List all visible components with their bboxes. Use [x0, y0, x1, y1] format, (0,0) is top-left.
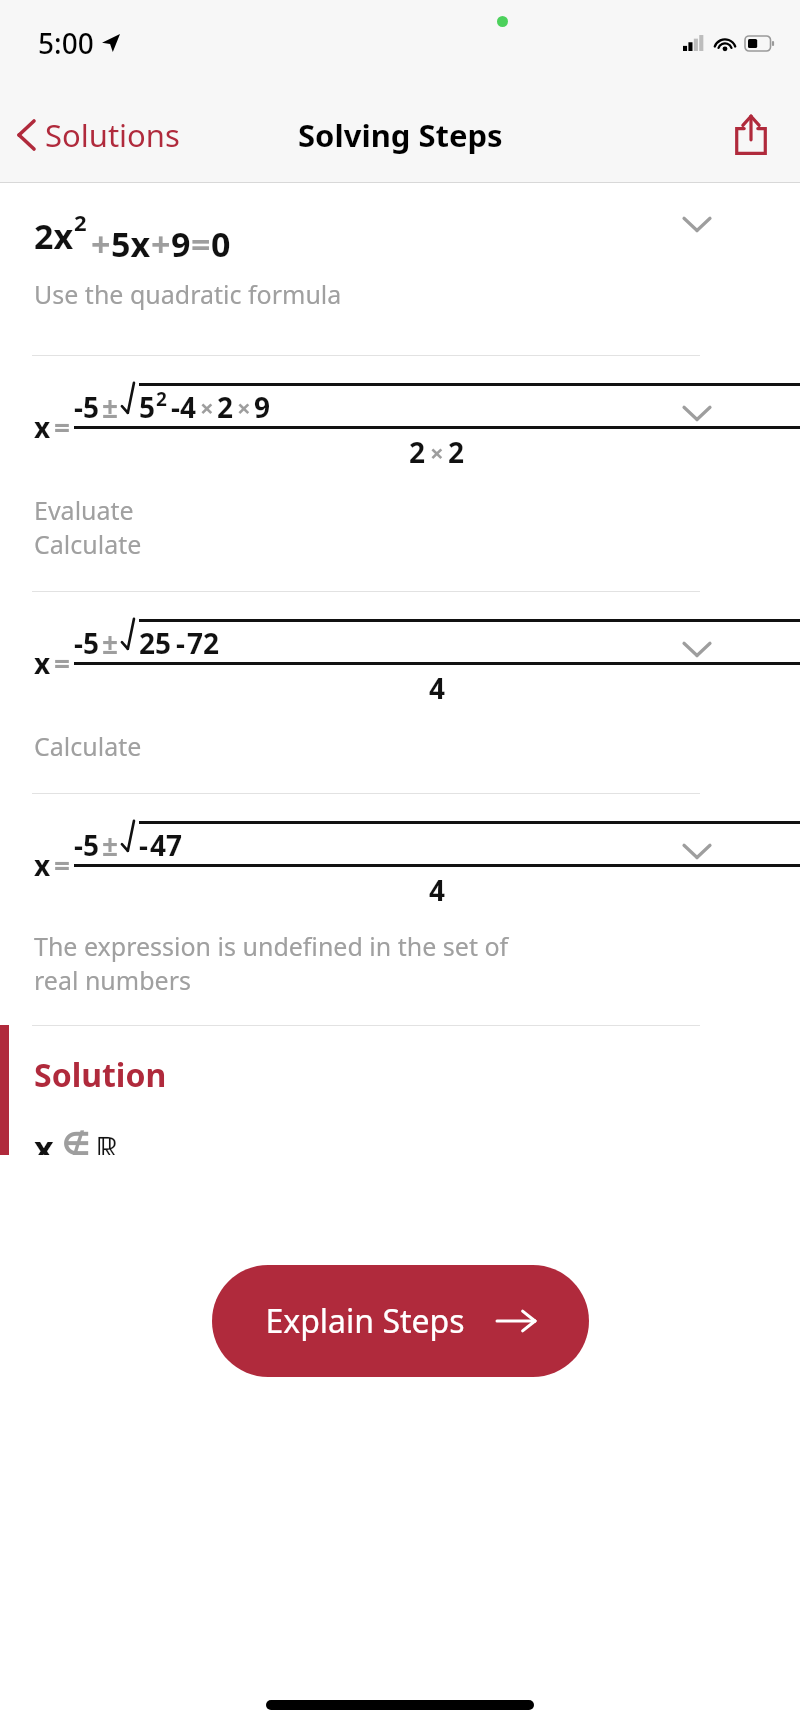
staticText: 5: [83, 624, 100, 662]
staticText: 5: [139, 388, 156, 426]
staticText: ∉: [62, 1125, 91, 1155]
staticText: 2x: [34, 213, 74, 259]
staticText: 2: [156, 386, 167, 412]
staticText: ±: [102, 624, 119, 662]
staticText: x: [34, 408, 51, 446]
button[interactable]: Share: [720, 104, 782, 166]
staticText: 9: [254, 388, 271, 426]
staticText: 5:00: [38, 24, 94, 62]
button[interactable]: Expand step: [670, 824, 724, 878]
staticText: Calculate: [34, 527, 142, 561]
staticText: Solutions: [45, 114, 180, 156]
staticText: 2: [448, 433, 465, 471]
staticText: x: [34, 1125, 54, 1155]
staticText: ×: [200, 391, 214, 424]
staticText: -: [171, 388, 180, 426]
staticText: =: [54, 644, 71, 682]
staticText: 9: [171, 221, 191, 267]
button[interactable]: x: [0, 592, 800, 763]
button[interactable]: Expand step: [670, 386, 724, 440]
staticText: Use the quadratic formula: [34, 277, 342, 311]
staticText: Explain Steps: [265, 1299, 465, 1343]
staticText: 2: [409, 433, 426, 471]
button[interactable]: x: [0, 794, 800, 997]
staticText: ±: [102, 388, 119, 426]
staticText: 0: [211, 221, 231, 267]
staticText: 72: [187, 624, 220, 662]
button[interactable]: x: [0, 356, 800, 561]
button[interactable]: Expand step: [670, 197, 724, 251]
button[interactable]: Solutions: [0, 106, 194, 164]
staticText: =: [54, 408, 71, 446]
staticText: -: [74, 826, 83, 864]
staticText: -: [74, 624, 83, 662]
staticText: 25: [139, 624, 172, 662]
staticText: The expression is undefined in the set o…: [34, 929, 509, 963]
staticText: 5x: [111, 221, 151, 267]
staticText: 4: [180, 388, 197, 426]
staticText: -: [176, 624, 185, 662]
staticText: 2: [217, 388, 234, 426]
staticText: =: [54, 846, 71, 884]
staticText: -: [74, 388, 83, 426]
staticText: 47: [150, 826, 183, 864]
staticText: ±: [102, 826, 119, 864]
staticText: 5: [83, 826, 100, 864]
staticText: +: [151, 221, 171, 267]
staticText: Solution: [34, 1053, 167, 1097]
staticText: 4: [429, 871, 446, 909]
staticText: ×: [237, 391, 251, 424]
staticText: Calculate: [34, 729, 142, 763]
staticText: 5: [83, 388, 100, 426]
staticText: x: [34, 644, 51, 682]
staticText: x: [34, 846, 51, 884]
staticText: -: [139, 826, 148, 864]
staticText: ℝ: [95, 1125, 120, 1155]
staticText: +: [91, 221, 111, 267]
staticText: ×: [430, 436, 444, 469]
staticText: Evaluate: [34, 493, 134, 527]
staticText: 2: [74, 207, 87, 237]
staticText: real numbers: [34, 963, 191, 997]
staticText: Solving Steps: [298, 114, 503, 156]
button[interactable]: Expand step: [670, 622, 724, 676]
button[interactable]: Explain Steps: [212, 1265, 589, 1377]
button[interactable]: 2x: [0, 183, 800, 319]
staticText: 4: [429, 669, 446, 707]
staticText: =: [191, 221, 211, 267]
